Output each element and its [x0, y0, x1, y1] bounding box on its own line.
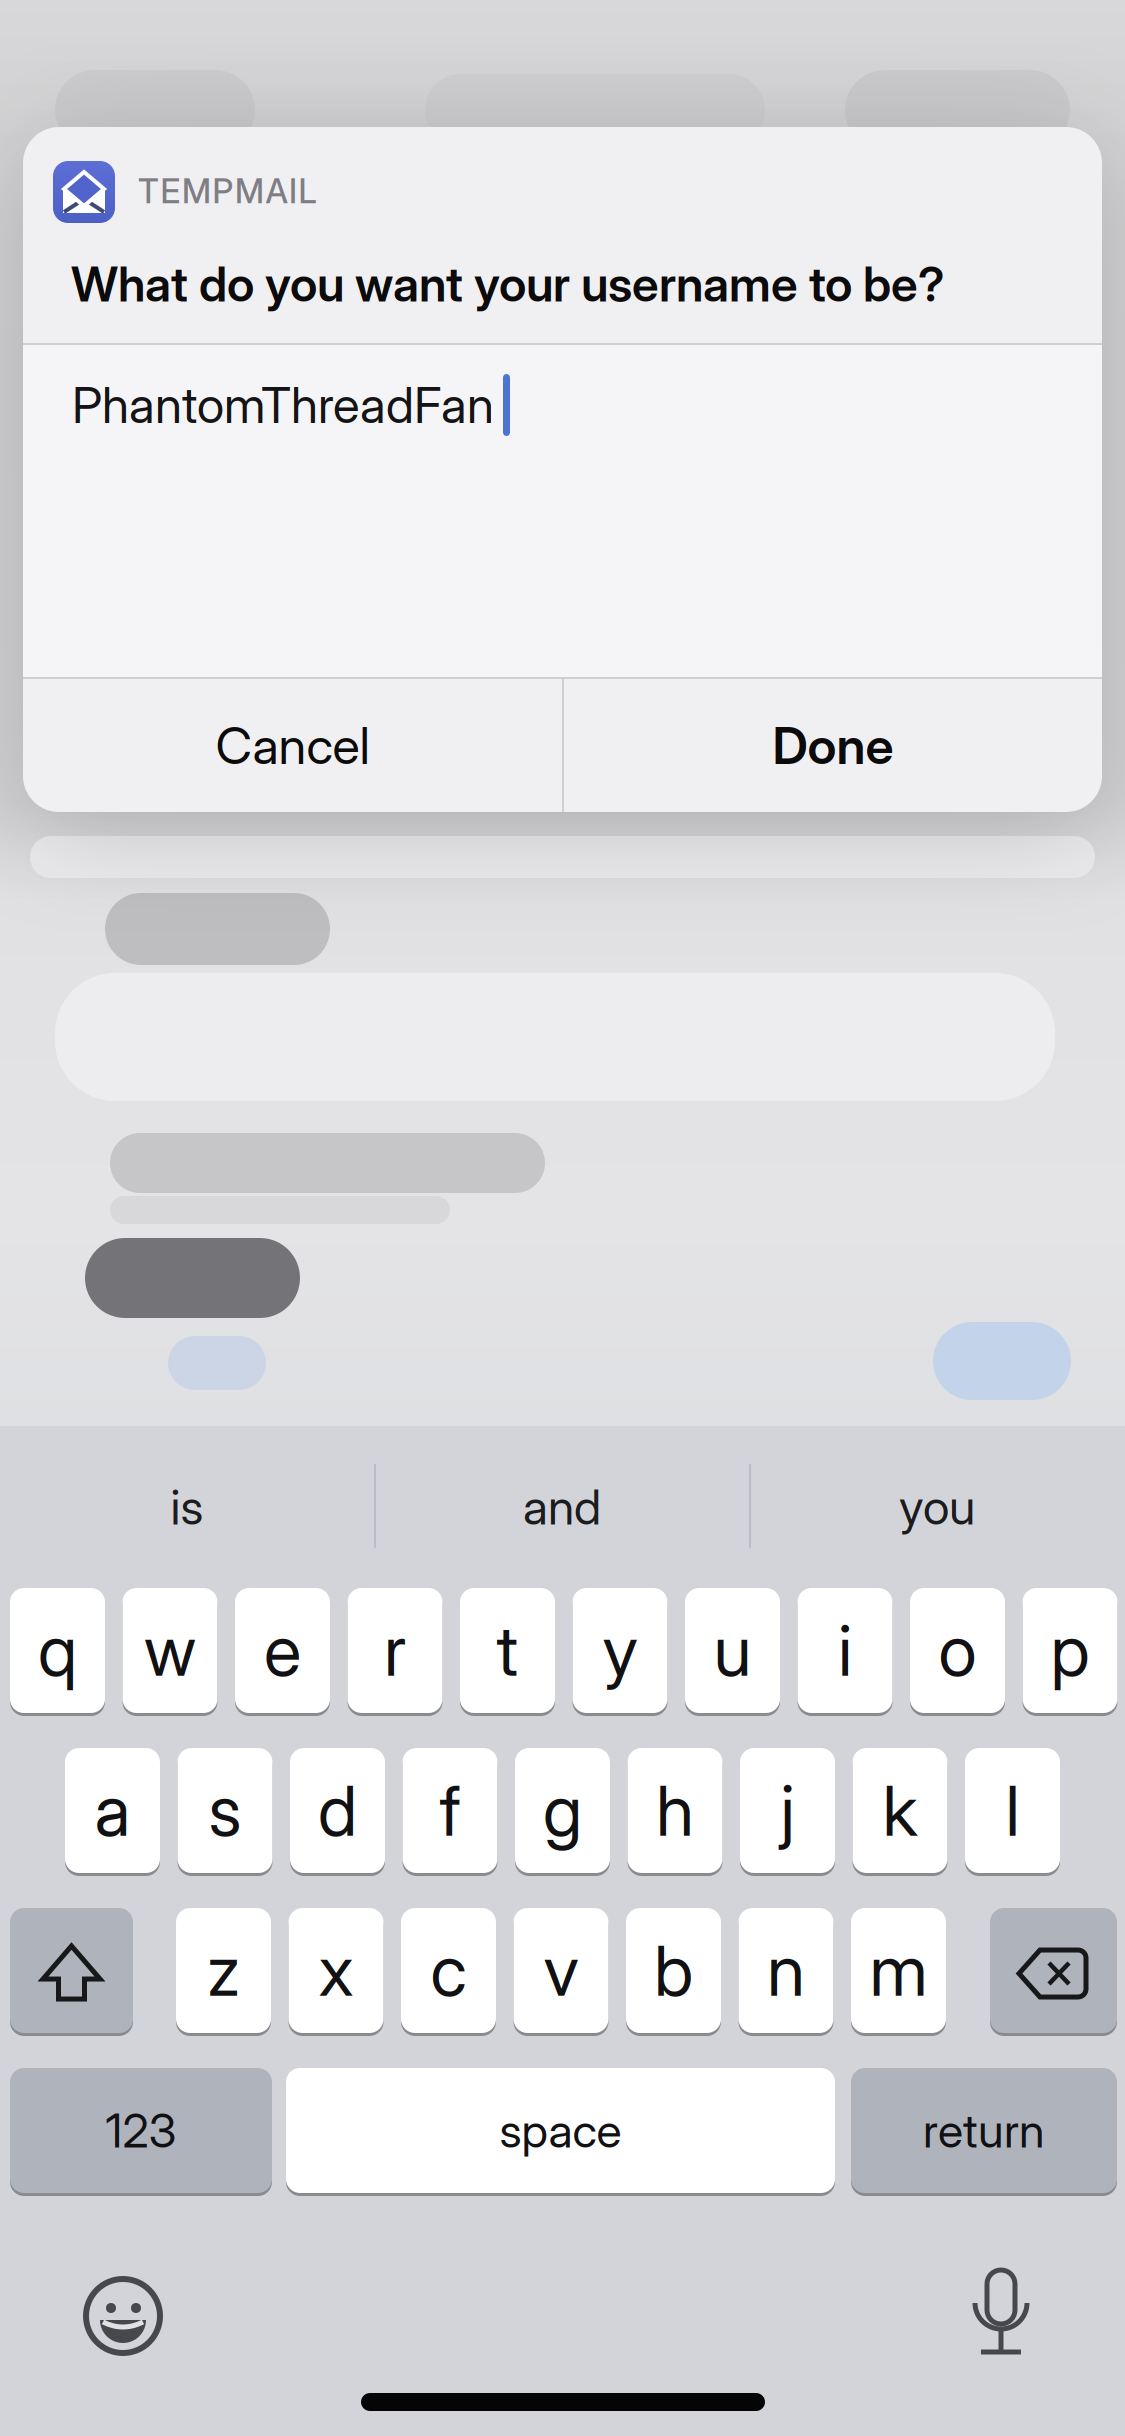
staticText: Cancel: [215, 716, 369, 775]
button[interactable]: v: [513, 1908, 608, 2033]
button[interactable]: x: [288, 1908, 383, 2033]
staticText: s: [208, 1770, 241, 1851]
staticText: i: [838, 1610, 852, 1691]
button[interactable]: t: [460, 1588, 555, 1713]
button[interactable]: Emoji: [58, 2250, 188, 2380]
button[interactable]: space: [286, 2068, 835, 2193]
staticText: o: [938, 1610, 976, 1691]
button[interactable]: m: [851, 1908, 946, 2033]
button[interactable]: c: [401, 1908, 496, 2033]
button[interactable]: Delete: [990, 1908, 1117, 2033]
staticText: g: [543, 1770, 582, 1851]
staticText: return: [923, 2103, 1045, 2158]
staticText: x: [318, 1930, 353, 2011]
button[interactable]: z: [176, 1908, 271, 2033]
button[interactable]: you: [750, 1426, 1124, 1588]
staticText: space: [499, 2103, 621, 2158]
staticText: y: [602, 1610, 637, 1691]
staticText: n: [767, 1930, 805, 2011]
button[interactable]: Cancel: [23, 679, 562, 812]
staticText: m: [869, 1930, 927, 2011]
button[interactable]: f: [402, 1748, 497, 1873]
button[interactable]: e: [235, 1588, 330, 1713]
button[interactable]: o: [910, 1588, 1005, 1713]
button[interactable]: k: [852, 1748, 947, 1873]
button[interactable]: p: [1022, 1588, 1117, 1713]
staticText: f: [439, 1770, 460, 1851]
staticText: PhantomThreadFan: [72, 376, 494, 434]
button[interactable]: Done: [564, 679, 1102, 812]
button[interactable]: n: [738, 1908, 833, 2033]
staticText: b: [654, 1930, 693, 2011]
staticText: What do you want your username to be?: [71, 256, 945, 312]
staticText: v: [543, 1930, 578, 2011]
button[interactable]: d: [290, 1748, 385, 1873]
staticText: Done: [772, 716, 893, 775]
staticText: d: [318, 1770, 357, 1851]
staticText: j: [780, 1770, 794, 1851]
button[interactable]: y: [572, 1588, 667, 1713]
button[interactable]: u: [685, 1588, 780, 1713]
staticText: c: [430, 1930, 466, 2011]
button[interactable]: i: [797, 1588, 892, 1713]
staticText: t: [496, 1610, 518, 1691]
staticText: u: [713, 1610, 751, 1691]
button[interactable]: g: [515, 1748, 610, 1873]
staticText: p: [1050, 1610, 1089, 1691]
button[interactable]: Dictation: [937, 2250, 1067, 2380]
staticText: h: [656, 1770, 694, 1851]
button[interactable]: and: [375, 1426, 749, 1588]
button[interactable]: return: [851, 2068, 1117, 2193]
staticText: and: [523, 1479, 601, 1535]
button[interactable]: j: [740, 1748, 835, 1873]
staticText: w: [144, 1610, 196, 1691]
button[interactable]: q: [10, 1588, 105, 1713]
staticText: you: [899, 1479, 975, 1535]
staticText: l: [1005, 1770, 1019, 1851]
staticText: TEMPMAIL: [138, 171, 316, 211]
button[interactable]: r: [347, 1588, 442, 1713]
staticText: z: [207, 1930, 240, 2011]
button[interactable]: Shift: [10, 1908, 133, 2033]
button[interactable]: is: [0, 1426, 374, 1588]
button[interactable]: b: [626, 1908, 721, 2033]
staticText: a: [94, 1770, 130, 1851]
button[interactable]: w: [122, 1588, 217, 1713]
staticText: k: [882, 1770, 917, 1851]
staticText: r: [384, 1610, 406, 1691]
staticText: e: [264, 1610, 301, 1691]
button[interactable]: l: [965, 1748, 1060, 1873]
staticText: is: [170, 1479, 203, 1535]
button[interactable]: 123: [10, 2068, 272, 2193]
button[interactable]: h: [627, 1748, 722, 1873]
staticText: q: [38, 1610, 77, 1691]
button[interactable]: a: [65, 1748, 160, 1873]
staticText: 123: [105, 2103, 176, 2158]
button[interactable]: s: [177, 1748, 272, 1873]
